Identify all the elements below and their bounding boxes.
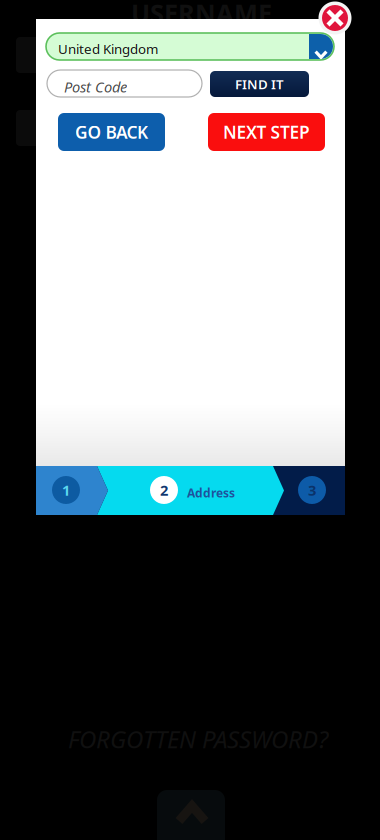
staticText: 3 <box>308 480 316 500</box>
button[interactable]: NEXT STEP <box>208 113 325 151</box>
staticText: Post Code <box>64 77 127 96</box>
staticText: FIND IT <box>235 75 284 93</box>
staticText: 1 <box>62 480 70 500</box>
button[interactable]: FIND IT <box>210 71 309 97</box>
button[interactable]: Step 3 <box>298 476 326 504</box>
staticText: USERNAME <box>131 0 272 30</box>
staticText: 2 <box>160 480 168 500</box>
staticText: FORGOTTEN PASSWORD? <box>68 723 328 755</box>
button[interactable]: Close <box>317 0 353 36</box>
staticText: GO BACK <box>75 120 148 143</box>
button[interactable]: GO BACK <box>58 113 165 151</box>
button[interactable]: Step 2, Address <box>97 466 284 515</box>
staticText: Address <box>187 485 235 501</box>
staticText: United Kingdom <box>58 40 158 58</box>
staticText: NEXT STEP <box>223 120 310 143</box>
button[interactable]: Step 1 <box>36 466 108 515</box>
button[interactable]: Choose country <box>309 34 333 59</box>
